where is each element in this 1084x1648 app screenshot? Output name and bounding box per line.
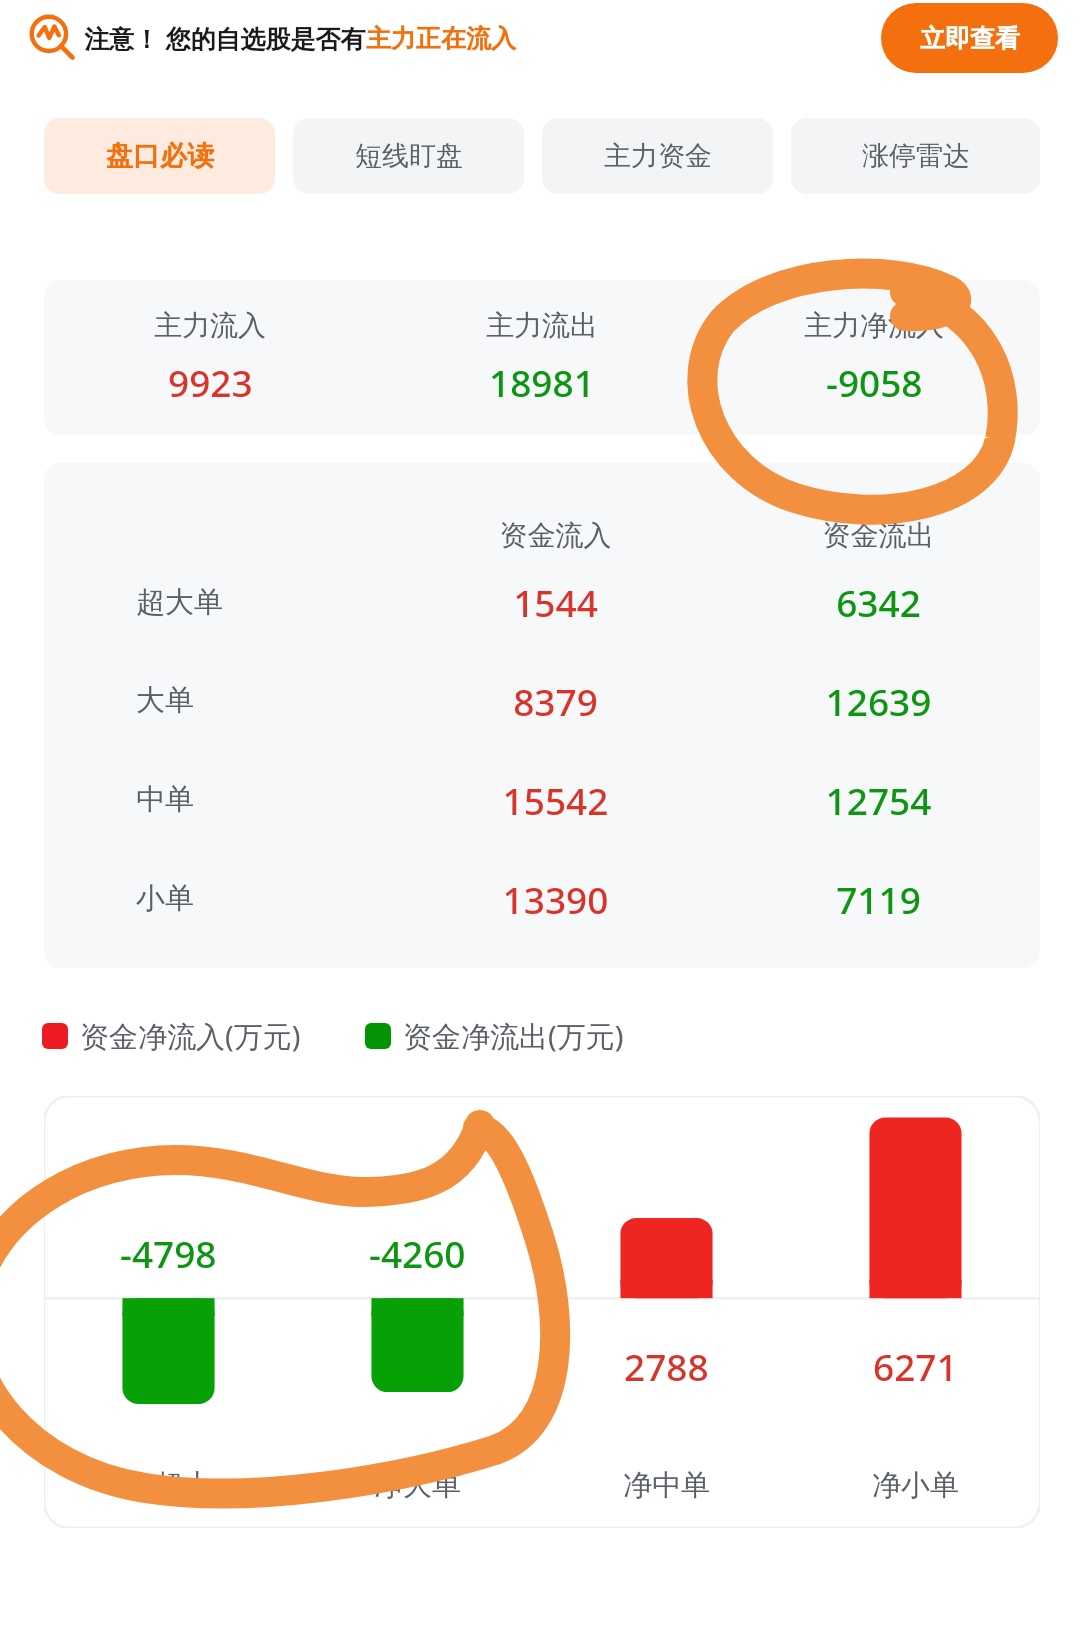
staticText: 主力正在流入 xyxy=(366,23,516,54)
staticText: 资金净流出(万元) xyxy=(403,1016,624,1056)
staticText: 7119 xyxy=(717,874,1040,924)
button[interactable]: 盘口必读 xyxy=(44,118,275,194)
staticText: 中单 xyxy=(136,781,194,818)
staticText: 小单 xyxy=(136,880,194,917)
staticText: -4798 xyxy=(120,1228,217,1278)
staticText: 1544 xyxy=(394,577,717,627)
staticText: 主力资金 xyxy=(604,139,712,173)
staticText: 涨停雷达 xyxy=(862,139,970,173)
staticText: 12754 xyxy=(717,775,1040,825)
staticText: -4260 xyxy=(369,1228,466,1278)
staticText: 短线盯盘 xyxy=(355,139,463,173)
staticText: 主力流出 xyxy=(486,308,598,343)
staticText: 8379 xyxy=(394,676,717,726)
staticText: 6271 xyxy=(873,1341,958,1391)
button[interactable]: -4798 xyxy=(44,1096,1040,1528)
staticText: 资金流出 xyxy=(717,518,1040,553)
button[interactable]: 短线盯盘 xyxy=(293,118,524,194)
staticText: 净小单 xyxy=(791,1467,1040,1504)
staticText: 15542 xyxy=(394,775,717,825)
staticText: 主力净流入 xyxy=(804,308,944,343)
staticText: 12639 xyxy=(717,676,1040,726)
button[interactable]: 资金流入 xyxy=(44,463,1040,968)
staticText: 注意！ 您的自选股是否有 xyxy=(84,21,366,55)
staticText: 13390 xyxy=(394,874,717,924)
other: Stock alert xyxy=(26,12,78,64)
staticText: 18981 xyxy=(489,357,595,407)
staticText: 净大单 xyxy=(293,1467,542,1504)
staticText: 6342 xyxy=(717,577,1040,627)
staticText: 资金流入 xyxy=(394,518,717,553)
staticText: 净中单 xyxy=(542,1467,791,1504)
staticText: -9058 xyxy=(826,357,923,407)
button[interactable]: Stock alert xyxy=(0,2,1084,74)
staticText: 大单 xyxy=(136,682,194,719)
staticText: 立即查看 xyxy=(920,23,1020,54)
button[interactable]: 立即查看 xyxy=(881,3,1058,73)
button[interactable]: 主力资金 xyxy=(542,118,773,194)
button[interactable]: 涨停雷达 xyxy=(791,118,1040,194)
staticText: 主力流入 xyxy=(154,308,266,343)
staticText: 超大单 xyxy=(136,584,223,621)
button[interactable]: 主力流入 xyxy=(44,280,1040,435)
staticText: 9923 xyxy=(168,357,253,407)
staticText: 净超大 xyxy=(44,1467,293,1504)
staticText: 资金净流入(万元) xyxy=(80,1016,301,1056)
staticText: 盘口必读 xyxy=(106,139,214,173)
staticText: 2788 xyxy=(624,1341,709,1391)
